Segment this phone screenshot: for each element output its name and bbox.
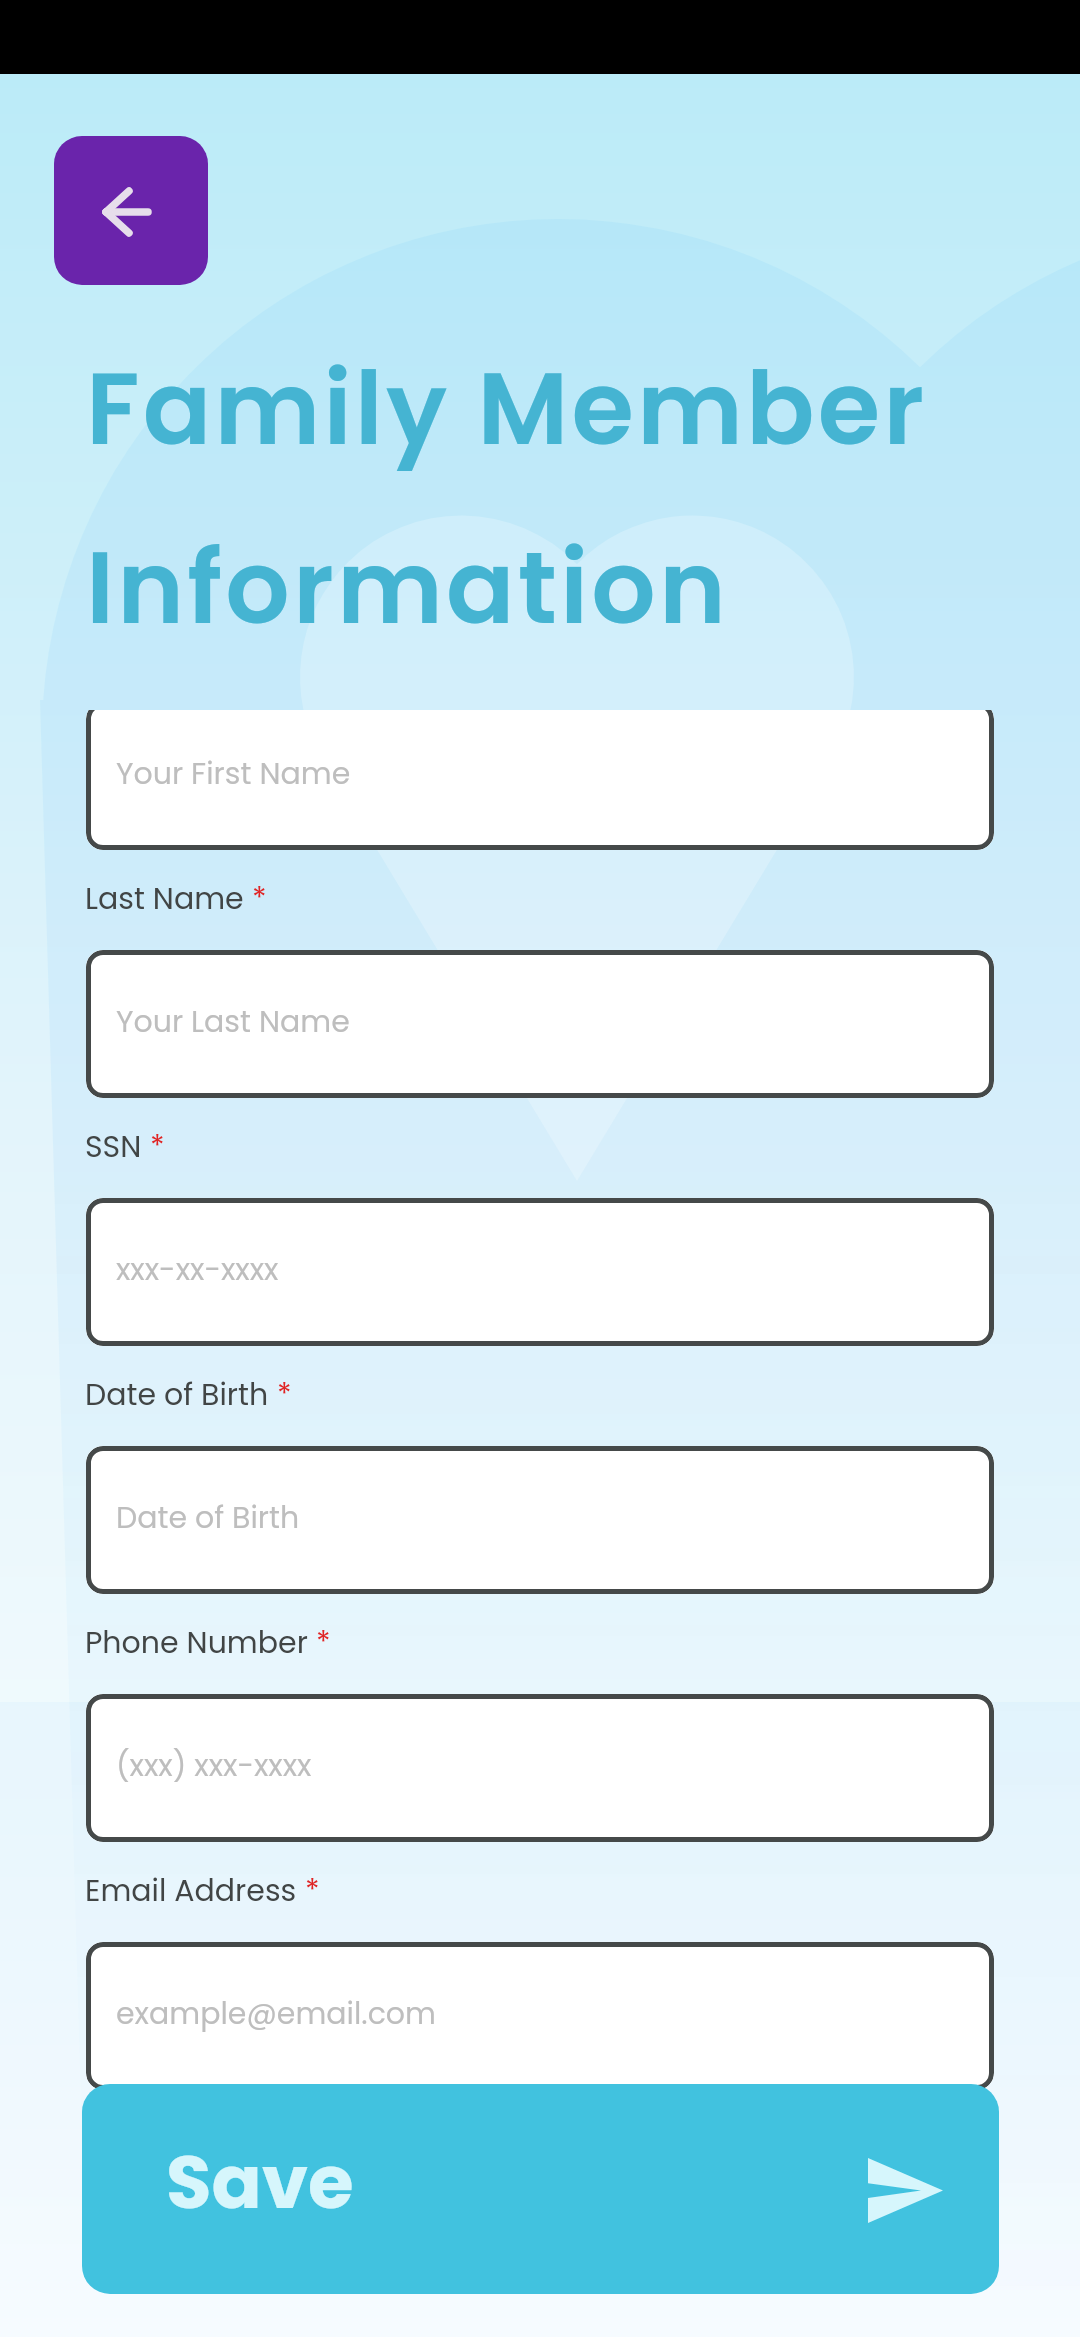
button[interactable]: Date of Birth bbox=[86, 1446, 994, 1594]
staticText: * bbox=[316, 1622, 331, 1664]
staticText: Your Last Name bbox=[116, 1001, 350, 1043]
staticText: * bbox=[305, 1870, 320, 1912]
staticText: xxx-xx-xxxx bbox=[116, 1249, 279, 1291]
staticText: * bbox=[252, 878, 267, 920]
staticText: Date of Birth bbox=[116, 1497, 300, 1539]
staticText: * bbox=[277, 1374, 292, 1416]
staticText: Email Address bbox=[85, 1870, 297, 1912]
button[interactable]: xxx-xx-xxxx bbox=[86, 1198, 994, 1346]
button[interactable]: (xxx) xxx-xxxx bbox=[86, 1694, 994, 1842]
staticText: Your First Name bbox=[116, 753, 351, 795]
staticText: Save bbox=[166, 2130, 354, 2234]
staticText: example@email.com bbox=[116, 1993, 436, 2035]
staticText: Date of Birth bbox=[85, 1374, 269, 1416]
staticText: Last Name bbox=[85, 878, 244, 920]
staticText: Phone Number bbox=[85, 1622, 308, 1664]
button[interactable]: Save bbox=[82, 2084, 999, 2294]
staticText: SSN bbox=[85, 1126, 142, 1168]
button[interactable]: Back bbox=[54, 136, 208, 285]
staticText: Family Member Information bbox=[86, 338, 1006, 659]
button[interactable]: Your First Name bbox=[86, 710, 994, 850]
button[interactable]: example@email.com bbox=[86, 1942, 994, 2090]
staticText: (xxx) xxx-xxxx bbox=[116, 1745, 312, 1787]
button[interactable]: Your Last Name bbox=[86, 950, 994, 1098]
staticText: * bbox=[150, 1126, 165, 1168]
